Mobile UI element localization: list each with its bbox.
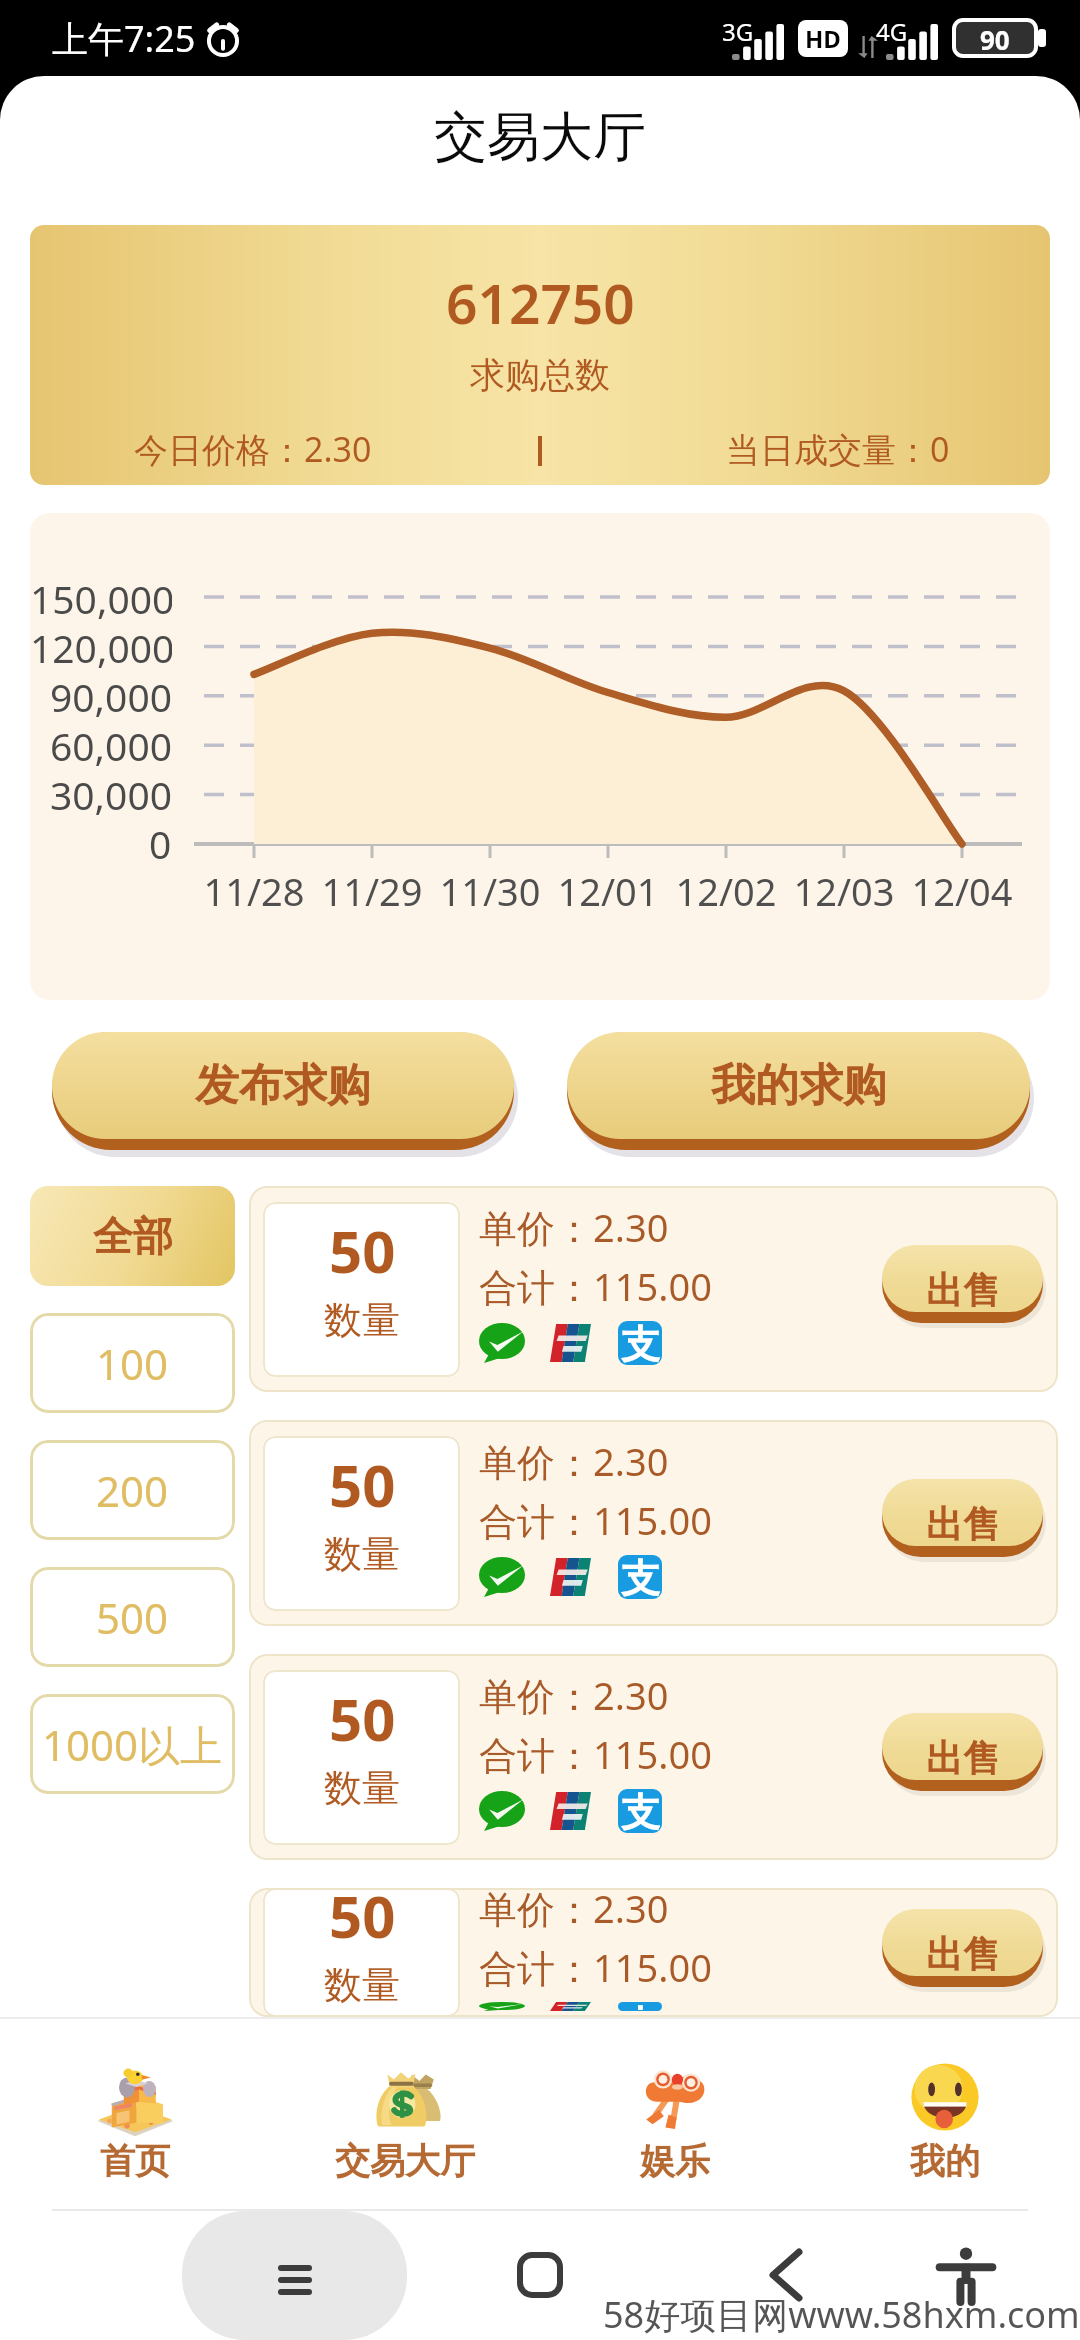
staticText: 单价：2.30 [479,1201,669,1253]
staticText: 50 [329,1445,396,1524]
staticText: 单价：2.30 [479,1888,669,1934]
button[interactable]: 50 [249,1654,1058,1860]
other: WeChat Pay [479,1791,525,1831]
staticText: 200 [96,1462,169,1519]
staticText: 612750 [446,265,635,340]
button[interactable]: 612750 [30,225,1050,485]
other: UnionPay [550,1324,591,1362]
staticText: 数量 [324,1296,400,1344]
staticText: 150,000 [30,572,172,621]
staticText: 90,000 [50,670,172,719]
button[interactable]: 100 [30,1313,235,1413]
staticText: 1000以上 [42,1716,223,1773]
staticText: 合计：115.00 [479,1728,712,1780]
staticText: 60,000 [50,719,172,768]
staticText: 500 [96,1589,169,1646]
button[interactable]: 出售 [882,1713,1043,1797]
staticText: 当日成交量：0 [726,426,950,472]
staticText: 12/02 [675,865,777,917]
button[interactable]: 500 [30,1567,235,1667]
staticText: 娱乐 [640,2139,710,2183]
button[interactable]: 50 [249,1186,1058,1392]
button[interactable]: 娱乐 [540,2017,810,2205]
staticText: 全部 [93,1211,173,1261]
staticText: 90 [980,22,1010,54]
other: Alipay [618,1555,662,1599]
button[interactable]: 出售 [882,1245,1043,1329]
other: UnionPay [550,1792,591,1830]
staticText: 50 [329,1679,396,1758]
staticText: 发布求购 [195,1058,371,1113]
button[interactable]: 发布求购 [52,1032,514,1157]
button[interactable]: 首页 [0,2017,270,2205]
staticText: 58好项目网www.58hxm.com [603,2290,1080,2339]
other: WeChat Pay [479,2002,525,2011]
button[interactable]: 出售 [882,1909,1043,1993]
staticText: 单价：2.30 [479,1435,669,1487]
staticText: 11/28 [203,865,305,917]
staticText: 交易大厅 [335,2139,475,2183]
staticText: 数量 [324,1961,400,2005]
staticText: HD [805,22,841,55]
staticText: 支 [621,1555,660,1598]
staticText: 合计：115.00 [479,1494,712,1546]
staticText: 出售 [926,1735,1000,1780]
button[interactable]: Back [738,2227,834,2323]
staticText: 首页 [100,2139,170,2183]
staticText: 0 [149,817,172,866]
staticText: 50 [329,1888,396,1955]
staticText: 支 [621,1789,660,1832]
button[interactable]: 50 [249,1888,1058,2017]
staticText: 12/03 [793,865,895,917]
button[interactable]: Recent apps [182,2211,407,2340]
staticText: 3G [722,15,754,48]
other: Alipay [618,1789,662,1833]
button[interactable]: 交易大厅 [270,2017,540,2205]
other: UnionPay [550,2002,591,2011]
staticText: 30,000 [50,768,172,817]
button[interactable]: Home [492,2227,588,2323]
staticText: 11/29 [321,865,423,917]
other: WeChat Pay [479,1557,525,1597]
button[interactable]: 我的 [810,2017,1080,2205]
other: Alipay [618,1321,662,1365]
other: Alipay [618,2002,662,2011]
staticText: 合计：115.00 [479,1260,712,1312]
button[interactable]: 全部 [30,1186,235,1286]
button[interactable]: 1000以上 [30,1694,235,1794]
staticText: 出售 [926,1501,1000,1546]
staticText: 我的 [910,2139,980,2183]
button[interactable]: 我的求购 [567,1032,1030,1157]
staticText: 单价：2.30 [479,1669,669,1721]
button[interactable]: Accessibility [918,2227,1014,2323]
staticText: 12/01 [557,865,659,917]
staticText: 上午7:25 [52,14,196,63]
staticText: 合计：115.00 [479,1941,712,1993]
staticText: 11/30 [439,865,541,917]
button[interactable]: 出售 [882,1479,1043,1563]
button[interactable]: 200 [30,1440,235,1540]
staticText: 我的求购 [711,1058,887,1113]
staticText: 今日价格：2.30 [134,426,372,472]
staticText: 求购总数 [470,353,610,397]
staticText: 50 [329,1211,396,1290]
staticText: 支 [621,2002,660,2010]
button[interactable]: 50 [249,1420,1058,1626]
staticText: 出售 [926,1267,1000,1312]
other: WeChat Pay [479,1323,525,1363]
staticText: 100 [96,1335,169,1392]
staticText: 支 [621,1321,660,1364]
staticText: 12/04 [911,865,1013,917]
staticText: 出售 [926,1931,1000,1976]
other: UnionPay [550,1558,591,1596]
staticText: 数量 [324,1764,400,1812]
staticText: 交易大厅 [434,104,646,171]
staticText: 数量 [324,1530,400,1578]
staticText: 120,000 [30,621,172,670]
staticText: 4G [876,15,908,48]
